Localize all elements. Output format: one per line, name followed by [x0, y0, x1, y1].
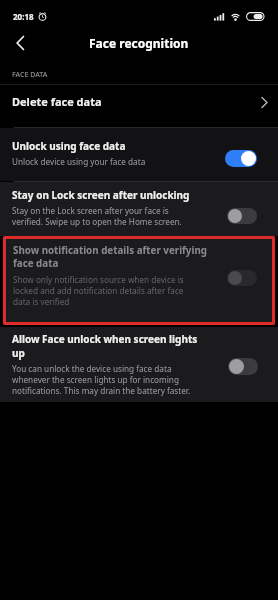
button[interactable] [225, 150, 257, 167]
staticText: 20:18 [13, 11, 34, 22]
staticText: Allow Face unlock when screen lights [12, 332, 198, 346]
button[interactable] [227, 208, 257, 224]
staticText: locked and add notification details afte… [13, 285, 184, 296]
staticText: Show only notification source when devic… [13, 274, 184, 285]
staticText: Stay on Lock screen after unlocking [12, 188, 190, 202]
button[interactable]: Show notification details after verifyin… [3, 236, 275, 325]
staticText: Delete face data [12, 94, 102, 109]
staticText: FACE DATA [12, 70, 48, 80]
staticText: face data [13, 257, 59, 270]
staticText: data is verified [13, 296, 70, 307]
staticText: Show notification details after verifyin… [13, 244, 207, 257]
button[interactable] [227, 270, 257, 286]
button[interactable]: Stay on Lock screen after unlocking [0, 182, 278, 236]
staticText: Unlock device using your face data [12, 156, 146, 167]
staticText: Unlock using face data [12, 139, 126, 153]
staticText: notifications. This may drain the batter… [12, 385, 191, 396]
button[interactable] [228, 358, 258, 375]
button[interactable]: Unlock using face data [0, 128, 278, 181]
staticText: Stay on the Lock screen after your face … [12, 205, 169, 216]
staticText: verified. Swipe up to open the Home scre… [12, 216, 182, 227]
staticText: up [12, 346, 25, 360]
staticText: whenever the screen lights up for incomi… [12, 374, 179, 385]
button[interactable]: Delete face data [0, 85, 278, 127]
staticText: Face recognition [89, 35, 189, 51]
button[interactable]: Allow Face unlock when screen lights [0, 327, 278, 402]
button[interactable] [9, 32, 31, 54]
staticText: You can unlock the device using face dat… [12, 363, 172, 374]
